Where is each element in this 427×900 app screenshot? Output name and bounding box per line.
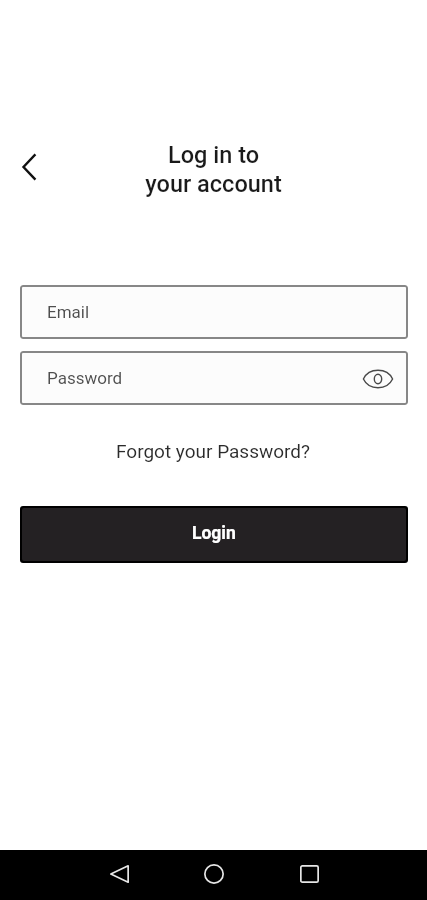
staticText: Log in to your account [145,141,282,198]
button[interactable]: Forgot your Password? [108,438,319,464]
button[interactable]: Back [95,850,143,898]
button[interactable]: Password [20,351,408,405]
button[interactable]: Login [22,508,406,561]
staticText: Email [47,302,90,322]
button[interactable]: Recent apps [285,850,333,898]
staticText: Forgot your Password? [116,440,311,462]
button[interactable]: Home [190,850,238,898]
button[interactable]: Email [20,285,408,339]
button[interactable]: Back [9,147,49,187]
button[interactable]: Show password [360,360,396,396]
staticText: Login [192,523,236,544]
staticText: Password [47,368,123,388]
